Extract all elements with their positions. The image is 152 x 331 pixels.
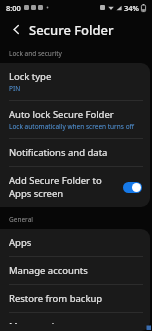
staticText: Secure Folder xyxy=(29,21,114,39)
button[interactable]: Restore from backup xyxy=(0,285,150,312)
staticText: Apps xyxy=(9,236,32,249)
button[interactable]: More settings xyxy=(0,313,150,331)
button[interactable]: Notifications and data xyxy=(0,139,150,166)
button[interactable]: Apps xyxy=(0,229,150,256)
staticText: General xyxy=(9,215,33,224)
staticText: Manage accounts xyxy=(9,264,88,277)
button[interactable]: Auto lock Secure Folder xyxy=(0,101,150,138)
staticText: Restore from backup xyxy=(9,292,103,305)
button[interactable]: Manage accounts xyxy=(0,257,150,284)
button[interactable]: Lock type xyxy=(0,63,150,100)
button[interactable]: Add Secure Folder to Apps screen xyxy=(0,167,150,207)
staticText: 8:00 xyxy=(6,3,21,13)
staticText: Lock and security xyxy=(9,49,62,58)
button[interactable]: Back xyxy=(8,21,25,38)
staticText: Lock automatically when screen turns off xyxy=(9,122,135,131)
staticText: Auto lock Secure Folder xyxy=(9,108,114,121)
staticText: Notifications and data xyxy=(9,146,108,159)
staticText: Add Secure Folder to Apps screen xyxy=(9,174,120,200)
staticText: PIN xyxy=(9,84,21,93)
staticText: Lock type xyxy=(9,70,52,83)
staticText: 34% xyxy=(124,3,139,13)
staticText: More settings xyxy=(9,320,71,324)
